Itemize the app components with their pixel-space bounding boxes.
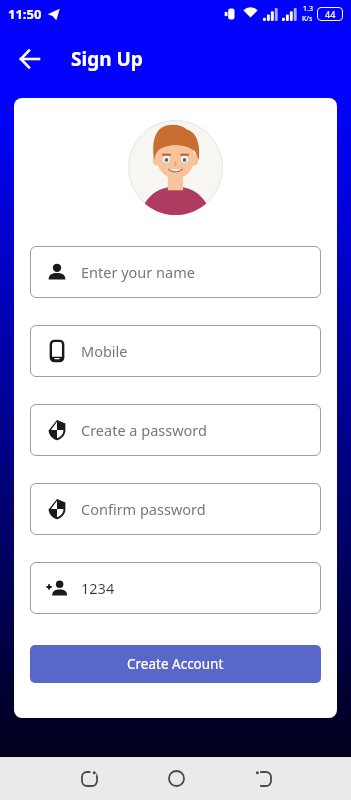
staticText: Sign Up	[71, 46, 143, 72]
staticText: Mobile	[81, 341, 128, 361]
staticText: K/s	[302, 14, 313, 24]
button[interactable]	[233, 757, 293, 800]
staticText: Create Account	[127, 655, 224, 673]
staticText: Confirm password	[81, 499, 206, 519]
button[interactable]	[59, 757, 119, 800]
staticText: 44	[325, 8, 336, 20]
button[interactable]: Mobile	[30, 325, 321, 377]
staticText: Enter your name	[81, 262, 195, 282]
staticText: 11:50	[8, 5, 42, 23]
button[interactable]: Create Account	[30, 645, 321, 683]
button[interactable]: 1234	[30, 562, 321, 614]
button[interactable]: Enter your name	[30, 246, 321, 298]
button[interactable]	[146, 757, 206, 800]
button[interactable]: Confirm password	[30, 483, 321, 535]
staticText: 1.3	[303, 4, 313, 14]
staticText: Create a password	[81, 420, 207, 440]
staticText: 1234	[81, 578, 115, 598]
button[interactable]: Create a password	[30, 404, 321, 456]
button[interactable]	[20, 49, 40, 69]
